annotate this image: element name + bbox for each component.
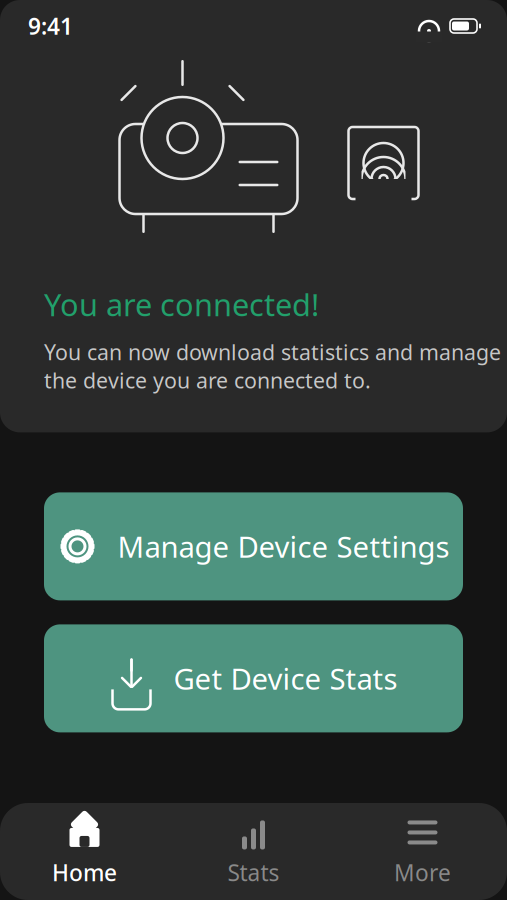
staticText: Stats (227, 857, 279, 887)
staticText: the device you are connected to. (44, 366, 371, 394)
staticText: 9:41 (28, 11, 73, 41)
button[interactable]: Get Device Stats (44, 624, 463, 732)
staticText: Get Device Stats (173, 659, 397, 698)
button[interactable]: Manage Device Settings (44, 492, 463, 600)
staticText: You are connected! (44, 284, 319, 325)
button[interactable]: More (338, 803, 507, 900)
staticText: More (394, 857, 451, 887)
button[interactable]: Stats (169, 803, 338, 900)
staticText: Manage Device Settings (117, 527, 449, 566)
button[interactable]: Home (0, 803, 169, 900)
staticText: Home (52, 857, 117, 887)
staticText: You can now download statistics and mana… (44, 338, 501, 366)
